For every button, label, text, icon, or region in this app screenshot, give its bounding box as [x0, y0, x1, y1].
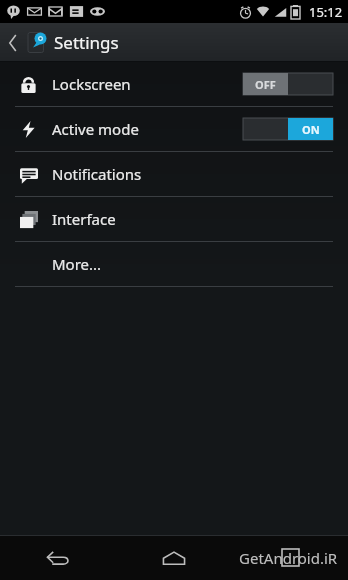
button[interactable]: Lockscreen [0, 62, 348, 106]
staticText: More... [52, 254, 102, 274]
button[interactable]: Active mode [0, 107, 348, 151]
staticText: Interface [52, 209, 116, 229]
button[interactable]: Toggle off [243, 73, 333, 95]
button[interactable]: Home [116, 535, 232, 580]
button[interactable]: More... [0, 242, 348, 286]
staticText: GetAndroid.iR [239, 548, 338, 568]
button[interactable]: Recent apps [232, 535, 348, 580]
staticText: Notifications [52, 164, 142, 184]
staticText: 15:12 [309, 3, 343, 21]
staticText: Settings [54, 31, 119, 54]
staticText: OFF [255, 77, 276, 92]
button[interactable]: Back [0, 535, 116, 580]
button[interactable]: Notifications [0, 152, 348, 196]
staticText: ON [302, 122, 320, 137]
button[interactable]: Navigate up [0, 23, 54, 62]
staticText: Lockscreen [52, 74, 131, 94]
button[interactable]: Toggle on [243, 118, 333, 140]
staticText: Active mode [52, 119, 139, 139]
button[interactable]: Interface [0, 197, 348, 241]
